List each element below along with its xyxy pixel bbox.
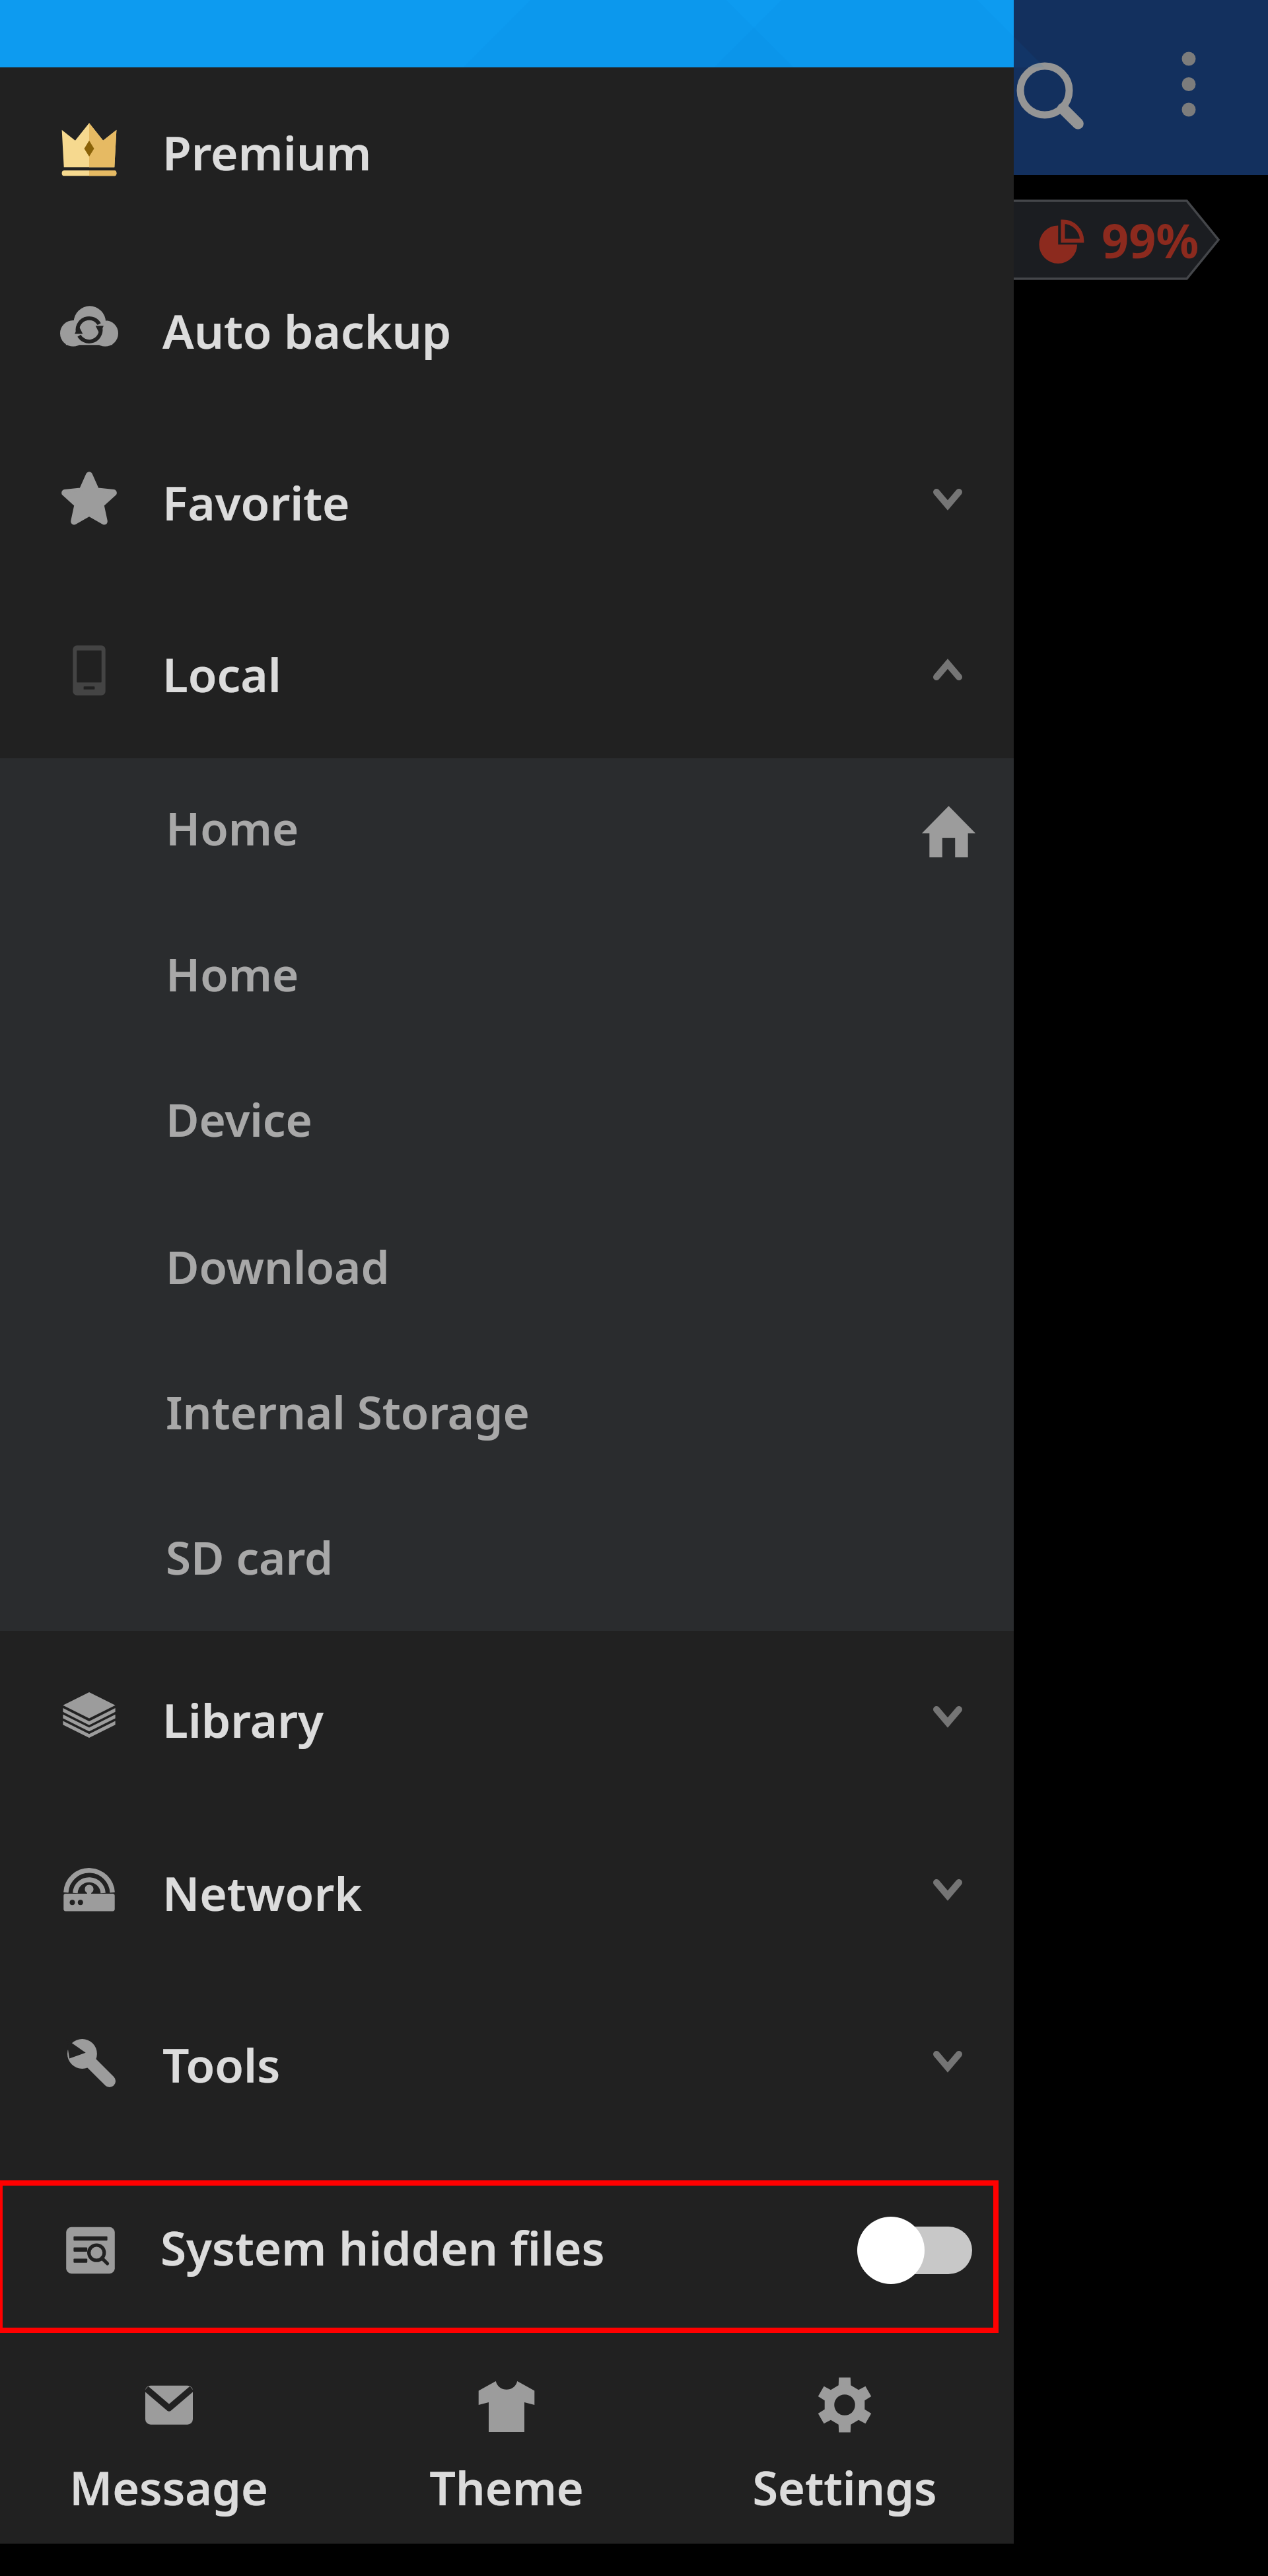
staticText: Network [162, 1861, 362, 1925]
button[interactable]: Library [0, 1643, 1014, 1789]
staticText: Library [162, 1688, 324, 1752]
staticText: Internal Storage [166, 1380, 530, 1443]
staticText: Home [166, 943, 299, 1005]
button[interactable]: Local [0, 598, 1014, 743]
button[interactable]: Tools [0, 1988, 1014, 2133]
staticText: Download [166, 1235, 390, 1297]
staticText: Tools [162, 2032, 281, 2096]
button[interactable]: Home [0, 904, 1014, 1049]
button[interactable]: Device [0, 1049, 1014, 1194]
button[interactable]: Download [0, 1196, 1014, 1342]
staticText: 99% [1102, 207, 1199, 272]
button[interactable]: Theme [337, 2348, 676, 2544]
button[interactable]: System hidden files [0, 2183, 1014, 2330]
button[interactable]: Settings [676, 2348, 1014, 2544]
staticText: Home [166, 797, 299, 859]
button[interactable]: SD card [0, 1487, 1014, 1632]
button[interactable]: Auto backup [0, 254, 1014, 400]
staticText: SD card [166, 1526, 334, 1588]
button[interactable]: Network [0, 1816, 1014, 1962]
button[interactable]: Show system hidden files [855, 2217, 976, 2284]
staticText: Local [162, 642, 281, 706]
button[interactable]: Message [0, 2348, 337, 2544]
staticText: Device [166, 1088, 312, 1150]
staticText: Theme [429, 2456, 584, 2519]
button[interactable]: Home [0, 758, 1014, 903]
staticText: Favorite [162, 470, 350, 534]
staticText: System hidden files [160, 2215, 605, 2279]
staticText: Settings [752, 2456, 937, 2519]
button[interactable]: Premium [0, 76, 1014, 221]
staticText: Auto backup [162, 299, 452, 363]
staticText: Premium [162, 120, 372, 184]
staticText: Message [69, 2456, 268, 2519]
button[interactable]: Search [999, 44, 1091, 137]
button[interactable]: Favorite [0, 426, 1014, 571]
button[interactable]: Internal Storage [0, 1342, 1014, 1487]
button[interactable]: More options [1149, 41, 1228, 120]
